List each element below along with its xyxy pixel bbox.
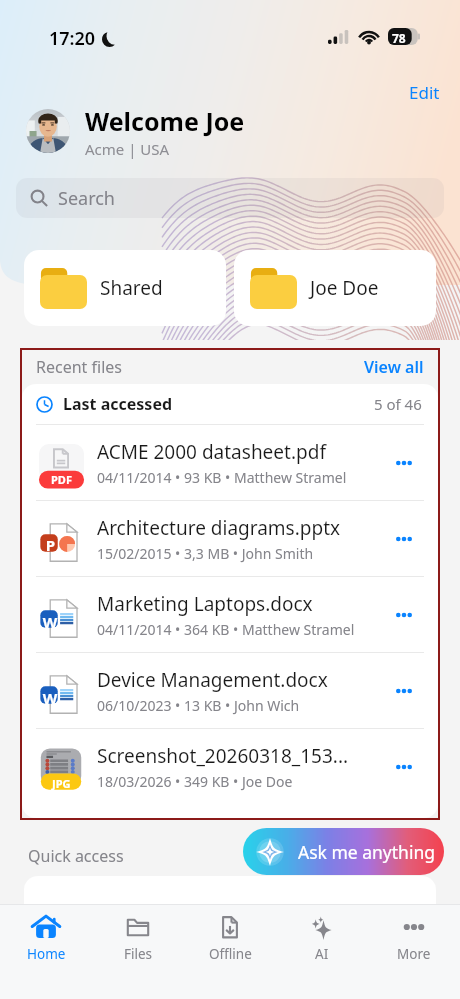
staticText: Shared	[100, 275, 163, 301]
staticText: Offline	[209, 945, 252, 963]
staticText: Ask me anything	[298, 840, 436, 864]
staticText: Welcome Joe	[85, 104, 245, 138]
button[interactable]: P	[22, 500, 438, 576]
button[interactable]: W	[22, 576, 438, 652]
staticText: W	[41, 688, 59, 708]
button[interactable]: Files	[92, 905, 184, 999]
staticText: Screenshot_20260318_153...	[97, 743, 349, 769]
staticText: 04/11/2014 • 364 KB • Matthew Stramel	[97, 620, 355, 639]
staticText: Joe Doe	[310, 275, 379, 301]
staticText: Last accessed	[63, 393, 173, 415]
button[interactable]: Shared	[24, 250, 226, 326]
staticText: Acme | USA	[85, 139, 170, 159]
staticText: Search	[58, 186, 115, 211]
button[interactable]: More options	[385, 520, 423, 558]
staticText: Files	[124, 945, 153, 963]
staticText: Edit	[409, 81, 440, 104]
staticText: Architecture diagrams.pptx	[97, 515, 341, 541]
button[interactable]: More options	[385, 672, 423, 710]
button[interactable]: Joe Doe	[234, 250, 436, 326]
staticText: AI	[315, 945, 329, 963]
staticText: JPG	[52, 776, 71, 791]
staticText: 17:20	[49, 26, 96, 51]
button[interactable]: More options	[385, 596, 423, 634]
staticText: View all	[364, 356, 424, 378]
button[interactable]: Home	[0, 905, 92, 999]
staticText: 06/10/2023 • 13 KB • John Wich	[97, 696, 300, 715]
button[interactable]: Search	[16, 178, 444, 218]
staticText: W	[41, 612, 59, 632]
staticText: 18/03/2026 • 349 KB • Joe Doe	[97, 772, 293, 791]
button[interactable]: Ask me anything	[243, 828, 444, 875]
staticText: 04/11/2014 • 93 KB • Matthew Stramel	[97, 468, 347, 487]
button[interactable]: JPG	[22, 728, 438, 804]
staticText: ACME 2000 datasheet.pdf	[97, 439, 326, 465]
staticText: Marketing Laptops.docx	[97, 591, 313, 617]
button[interactable]: View all	[364, 356, 424, 378]
staticText: Recent files	[36, 356, 122, 378]
button[interactable]: Edit	[400, 76, 449, 109]
staticText: More	[397, 945, 431, 963]
staticText: PDF	[51, 472, 72, 487]
staticText: Quick access	[28, 845, 124, 867]
button[interactable]: W	[22, 652, 438, 728]
button[interactable]: More options	[385, 444, 423, 482]
button[interactable]: Offline	[184, 905, 276, 999]
button[interactable]: More	[368, 905, 460, 999]
button[interactable]: AI	[276, 905, 368, 999]
staticText: P	[42, 535, 59, 555]
staticText: Home	[27, 945, 66, 963]
staticText: 78	[392, 30, 406, 46]
staticText: Device Management.docx	[97, 667, 328, 693]
staticText: 5 of 46	[374, 394, 422, 414]
staticText: 15/02/2015 • 3,3 MB • John Smith	[97, 544, 314, 563]
button[interactable]: Last accessed	[22, 384, 438, 424]
button[interactable]: PDF	[22, 424, 438, 500]
button[interactable]: More options	[385, 748, 423, 786]
